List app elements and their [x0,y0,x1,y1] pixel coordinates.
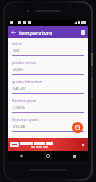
staticText: temperatura [19,29,77,36]
button[interactable]: Advertisement [8,138,88,151]
button[interactable]: Back [8,151,34,161]
staticText: 540.33 [13,86,25,91]
staticText: Reaumur grado [12,117,39,122]
staticText: 26.85 [13,67,23,72]
button[interactable]: Calcular [72,122,83,133]
staticText: kelvin [12,41,22,46]
staticText: grados fahrenheit [12,79,43,84]
staticText: Rankine grado [12,98,37,103]
staticText: 1.0395 [13,105,25,110]
button[interactable]: Back [8,26,19,38]
button[interactable]: Home [34,151,61,161]
button[interactable]: kelvin [12,41,84,59]
button[interactable]: grados celsius [12,60,84,78]
staticText: 213.48 [13,124,25,129]
button[interactable]: Recents [61,151,88,161]
button[interactable]: Reaumur grado [12,117,84,135]
button[interactable]: Rankine grado [12,98,84,116]
button[interactable]: grados fahrenheit [12,79,84,97]
staticText: 300 [13,48,20,53]
button[interactable]: Delete [77,26,88,38]
staticText: grados celsius [12,60,36,65]
